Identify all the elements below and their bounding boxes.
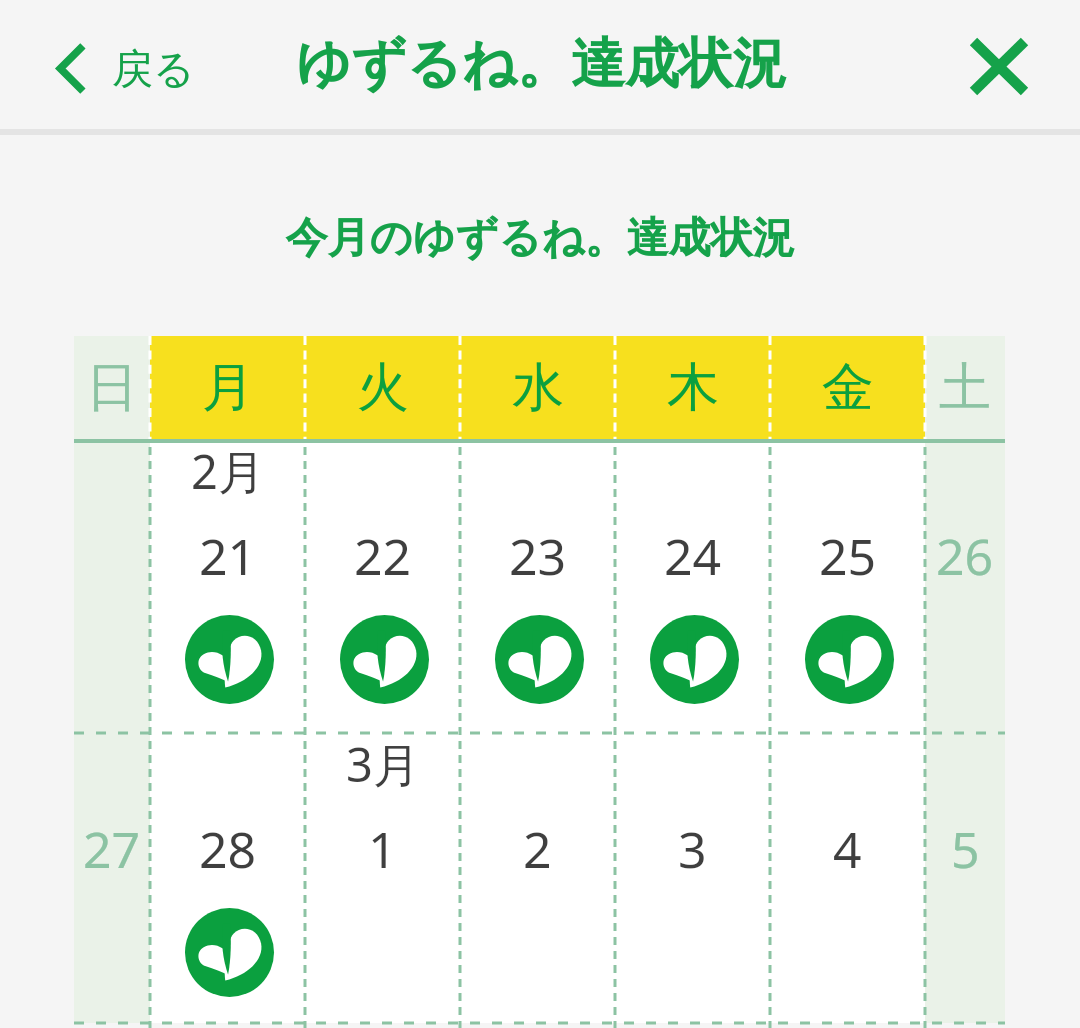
staticText: 21 (199, 522, 257, 584)
staticText: 2月 (191, 439, 265, 501)
button[interactable]: 戻る (39, 26, 213, 110)
staticText: 24 (664, 522, 722, 584)
staticText: 1 (368, 815, 397, 877)
button[interactable]: 2 (460, 733, 615, 1023)
staticText: 水 (512, 355, 564, 421)
staticText: 3月 (346, 732, 420, 794)
staticText: 22 (354, 522, 412, 584)
staticText: 3 (678, 815, 707, 877)
button[interactable] (74, 443, 150, 733)
button[interactable]: 4 (770, 733, 925, 1023)
staticText: 月 (202, 355, 254, 421)
staticText: 火 (357, 355, 409, 421)
button[interactable]: 23 (460, 443, 615, 733)
staticText: 土 (939, 355, 991, 421)
button[interactable]: 27 (74, 733, 150, 1023)
button[interactable]: Close (952, 20, 1046, 113)
staticText: 今月のゆずるね。達成状況 (0, 212, 1080, 265)
staticText: 木 (667, 355, 719, 421)
staticText: 25 (819, 522, 877, 584)
staticText: 4 (833, 815, 862, 877)
button[interactable]: 3月 (305, 733, 460, 1023)
staticText: 23 (509, 522, 567, 584)
button[interactable]: 2月 (150, 443, 305, 733)
button[interactable]: 3 (615, 733, 770, 1023)
staticText: 27 (83, 815, 141, 877)
staticText: 28 (199, 815, 257, 877)
button[interactable]: 5 (925, 733, 1005, 1023)
staticText: 2 (523, 815, 552, 877)
staticText: 26 (936, 522, 994, 584)
staticText: 戻る (112, 44, 195, 96)
staticText: 日 (86, 355, 138, 421)
staticText: 金 (822, 355, 874, 421)
staticText: 5 (951, 815, 980, 877)
button[interactable]: 25 (770, 443, 925, 733)
staticText: ゆずるね。達成状況 (296, 30, 788, 98)
button[interactable]: 24 (615, 443, 770, 733)
button[interactable]: 28 (150, 733, 305, 1023)
button[interactable]: 26 (925, 443, 1005, 733)
button[interactable]: 22 (305, 443, 460, 733)
